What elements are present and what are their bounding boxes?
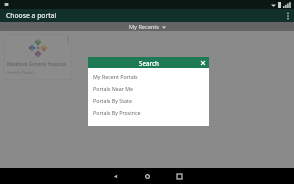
button[interactable]: My Recents [0,22,294,31]
button[interactable]: Close [198,58,207,67]
button[interactable]: My Recent Portals [88,70,209,82]
button[interactable]: Mednock General Hospital [4,34,72,80]
staticText: Choose a portal [6,11,57,20]
button[interactable]: Home [136,168,158,184]
staticText: Portals By State [93,97,132,104]
button[interactable]: Portals By Province [88,106,209,118]
staticText: Mednock General Hospital [7,61,67,67]
staticText: My Recents [129,23,160,31]
button[interactable]: Portals Near Me [88,82,209,94]
staticText: Portals By Province [93,109,141,116]
staticText: Search [139,59,159,67]
button[interactable]: Portals By State [88,94,209,106]
button[interactable]: Recent apps [168,168,190,184]
staticText: Health Portal [7,69,34,75]
button[interactable]: Back [104,168,126,184]
staticText: My Recent Portals [93,73,138,80]
button[interactable]: More options [281,9,294,22]
staticText: Portals Near Me [93,85,134,92]
